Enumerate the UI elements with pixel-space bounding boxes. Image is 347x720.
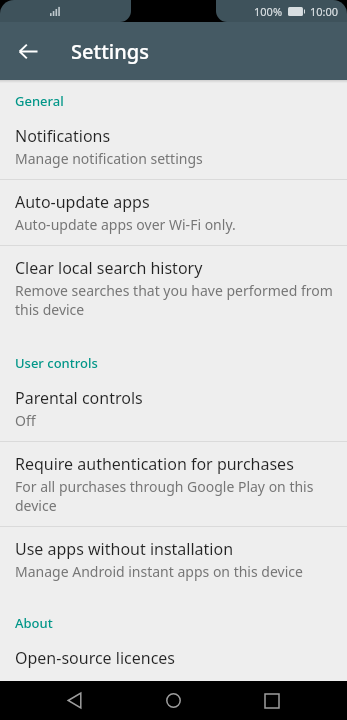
staticText: Clear local search history <box>15 257 203 279</box>
staticText: 10:00 <box>310 4 339 19</box>
button[interactable]: Use apps without installation <box>0 527 347 592</box>
staticText: Manage Android instant apps on this devi… <box>15 562 303 581</box>
staticText: Off <box>15 411 36 430</box>
staticText: Manage notification settings <box>15 149 203 168</box>
button[interactable]: Home <box>149 681 197 720</box>
button[interactable]: Back <box>50 681 98 720</box>
button[interactable]: Notifications <box>0 114 347 179</box>
staticText: 100% <box>254 4 283 19</box>
button[interactable]: Back <box>6 29 50 73</box>
staticText: Settings <box>71 38 149 65</box>
button[interactable]: Parental controls <box>0 376 347 441</box>
staticText: Auto-update apps over Wi-Fi only. <box>15 215 236 234</box>
button[interactable]: Recent apps <box>248 681 296 720</box>
staticText: For all purchases through Google Play on… <box>15 477 333 515</box>
staticText: General <box>15 92 347 110</box>
staticText: Require authentication for purchases <box>15 453 294 475</box>
button[interactable]: Auto-update apps <box>0 180 347 245</box>
staticText: Notifications <box>15 125 111 147</box>
staticText: About <box>15 614 347 632</box>
staticText: User controls <box>15 354 347 372</box>
staticText: Parental controls <box>15 387 143 409</box>
staticText: Open-source licences <box>15 647 176 669</box>
staticText: Auto-update apps <box>15 191 150 213</box>
button[interactable]: Open-source licences <box>0 636 347 681</box>
staticText: Remove searches that you have performed … <box>15 281 333 319</box>
button[interactable]: Clear local search history <box>0 246 347 330</box>
staticText: Use apps without installation <box>15 538 234 560</box>
button[interactable]: Require authentication for purchases <box>0 442 347 526</box>
